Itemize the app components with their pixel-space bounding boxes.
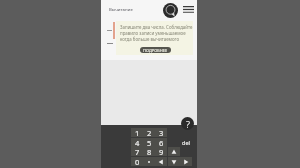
staticText: 0: [135, 157, 140, 166]
button[interactable]: 1: [131, 128, 143, 137]
button[interactable]: Up: [168, 147, 180, 156]
button[interactable]: 7: [131, 147, 143, 156]
staticText: ?: [186, 118, 190, 130]
button[interactable]: Right: [180, 157, 192, 166]
staticText: 4: [135, 138, 140, 147]
button[interactable]: del: [180, 138, 192, 147]
button[interactable]: Chat: [163, 3, 178, 18]
button[interactable]: Left: [155, 157, 167, 166]
button[interactable]: Down: [168, 157, 180, 166]
button[interactable]: [143, 157, 155, 166]
button[interactable]: 4: [131, 138, 143, 147]
button[interactable]: 3: [155, 128, 167, 137]
staticText: Запишите два числа. Соблюдайте: [120, 24, 193, 30]
button[interactable]: Help: [181, 117, 194, 130]
button[interactable]: 2: [143, 128, 155, 137]
staticText: 5: [147, 138, 152, 147]
staticText: правило записи уменьшаемое: [120, 30, 186, 36]
staticText: del: [182, 139, 190, 146]
staticText: 6: [159, 138, 164, 147]
staticText: 1: [135, 128, 140, 137]
button[interactable]: Menu: [183, 6, 194, 13]
staticText: Вычитание: [109, 6, 133, 12]
staticText: 2: [147, 128, 152, 137]
button[interactable]: Запишите два числа. Соблюдайте: [116, 21, 193, 55]
button[interactable]: 8: [143, 147, 155, 156]
button[interactable]: 6: [155, 138, 167, 147]
staticText: 9: [159, 147, 164, 156]
staticText: когда больше вычитаемого: [120, 36, 180, 42]
button[interactable]: ПОДРОБНЕЕ: [140, 47, 171, 53]
staticText: 3: [159, 128, 164, 137]
staticText: 8: [147, 147, 152, 156]
button[interactable]: 9: [155, 147, 167, 156]
button[interactable]: 0: [131, 157, 143, 166]
button[interactable]: 5: [143, 138, 155, 147]
staticText: ПОДРОБНЕЕ: [143, 48, 168, 53]
staticText: 7: [135, 147, 140, 156]
